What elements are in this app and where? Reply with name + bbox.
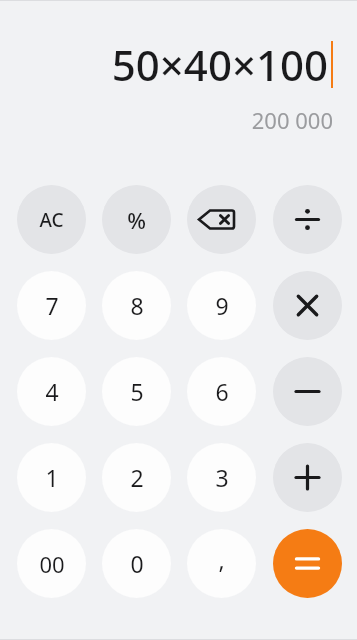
button[interactable]: Equals bbox=[273, 529, 342, 598]
staticText: 6 bbox=[215, 376, 229, 407]
staticText: 00 bbox=[39, 549, 65, 579]
button[interactable]: 5 bbox=[102, 357, 171, 426]
button[interactable]: 4 bbox=[17, 357, 86, 426]
button[interactable]: AC bbox=[17, 185, 86, 254]
button[interactable]: 8 bbox=[102, 271, 171, 340]
staticText: 1 bbox=[45, 462, 59, 493]
button[interactable]: Add bbox=[273, 443, 342, 512]
staticText: 2 bbox=[130, 462, 144, 493]
button[interactable]: 1 bbox=[17, 443, 86, 512]
staticText: 8 bbox=[130, 290, 144, 321]
button[interactable]: 7 bbox=[17, 271, 86, 340]
button[interactable]: 2 bbox=[102, 443, 171, 512]
button[interactable]: Divide bbox=[273, 185, 342, 254]
button[interactable]: 3 bbox=[187, 443, 256, 512]
staticText: 200 000 bbox=[251, 105, 333, 135]
staticText: 3 bbox=[215, 462, 229, 493]
staticText: AC bbox=[39, 207, 64, 233]
button[interactable]: , bbox=[187, 529, 256, 598]
button[interactable]: 00 bbox=[17, 529, 86, 598]
staticText: 9 bbox=[215, 290, 229, 321]
staticText: 5 bbox=[130, 376, 144, 407]
button[interactable]: % bbox=[102, 185, 171, 254]
staticText: % bbox=[127, 205, 146, 235]
button[interactable]: 0 bbox=[102, 529, 171, 598]
button[interactable]: Subtract bbox=[273, 357, 342, 426]
button[interactable]: 6 bbox=[187, 357, 256, 426]
button[interactable]: Backspace bbox=[187, 185, 256, 254]
staticText: 7 bbox=[45, 290, 59, 321]
button[interactable]: Multiply bbox=[273, 271, 342, 340]
staticText: 50×40×100 bbox=[111, 36, 328, 93]
staticText: 0 bbox=[130, 548, 144, 579]
staticText: , bbox=[218, 544, 225, 575]
staticText: 4 bbox=[45, 376, 59, 407]
button[interactable]: 9 bbox=[187, 271, 256, 340]
